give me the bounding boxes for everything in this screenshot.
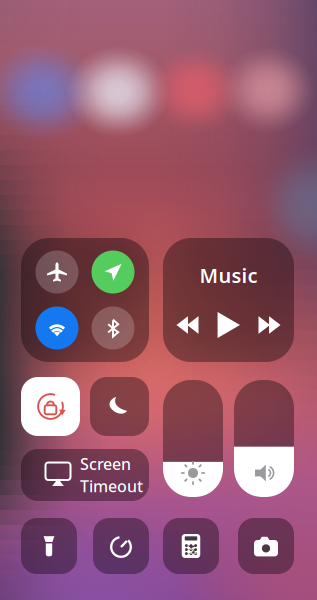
button[interactable]: Airplane Mode bbox=[35, 250, 78, 293]
staticText: Timeout bbox=[80, 475, 143, 497]
button[interactable]: Fast Forward bbox=[251, 311, 287, 339]
button[interactable]: Play bbox=[213, 310, 243, 340]
button[interactable]: Flashlight bbox=[21, 518, 77, 574]
button[interactable]: Calculator bbox=[163, 518, 219, 574]
button[interactable]: AirDrop bbox=[91, 250, 134, 293]
staticText: Music bbox=[199, 262, 257, 289]
button[interactable]: Timer bbox=[93, 518, 149, 574]
button[interactable]: Brightness bbox=[163, 380, 223, 497]
button[interactable]: Volume bbox=[234, 380, 294, 497]
button[interactable]: Rewind bbox=[169, 311, 205, 339]
button[interactable]: Do Not Disturb bbox=[90, 377, 149, 436]
button[interactable]: Screen Timeout bbox=[21, 449, 149, 501]
button[interactable]: Rotation Lock bbox=[21, 377, 80, 436]
button[interactable]: Camera bbox=[238, 518, 294, 574]
staticText: Screen bbox=[80, 453, 131, 474]
button[interactable]: Bluetooth bbox=[91, 306, 134, 349]
button[interactable]: Wi-Fi bbox=[35, 306, 78, 349]
